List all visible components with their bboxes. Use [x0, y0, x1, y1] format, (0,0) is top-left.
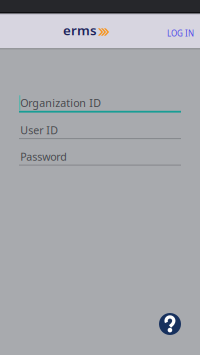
staticText: Organization ID — [20, 96, 101, 110]
staticText: erms — [63, 21, 97, 39]
staticText: LOG IN — [167, 28, 194, 39]
button[interactable]: Help — [159, 313, 181, 335]
button[interactable]: Password — [19, 149, 181, 166]
button[interactable]: LOG IN — [161, 20, 200, 47]
button[interactable]: User ID — [19, 122, 181, 139]
button[interactable]: Organization ID — [19, 95, 181, 113]
staticText: Password — [20, 149, 67, 164]
staticText: User ID — [20, 123, 58, 137]
